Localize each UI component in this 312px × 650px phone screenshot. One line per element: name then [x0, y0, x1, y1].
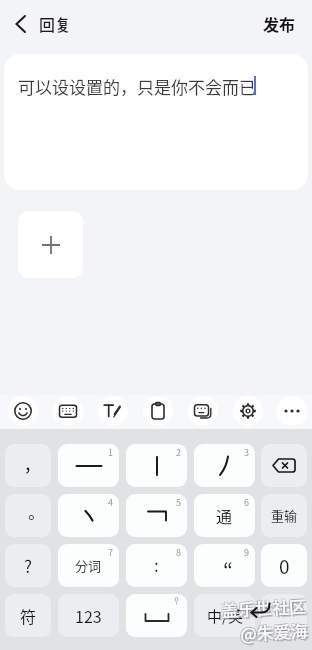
- staticText: 7: [108, 546, 113, 559]
- staticText: 重输: [271, 506, 298, 525]
- staticText: 5: [176, 496, 181, 509]
- staticText: 通: [216, 504, 233, 527]
- staticText: 4: [108, 496, 113, 509]
- staticText: 0: [279, 552, 290, 580]
- staticText: 123: [75, 604, 102, 627]
- staticText: 分词: [75, 556, 102, 575]
- staticText: 可以设设置的，只是你不会而已: [18, 74, 256, 99]
- staticText: 6: [244, 496, 249, 509]
- staticText: 。: [28, 499, 45, 524]
- staticText: 盖乐世社区: [219, 592, 306, 621]
- staticText: :: [154, 552, 159, 577]
- staticText: 3: [244, 446, 249, 459]
- staticText: 1: [108, 446, 113, 459]
- staticText: ?: [24, 553, 33, 578]
- staticText: 盖乐世社区: [221, 592, 308, 621]
- staticText: 盖乐世社区: [219, 594, 306, 623]
- staticText: 盖乐世社区: [220, 593, 307, 622]
- staticText: 2: [176, 446, 181, 459]
- staticText: 回复: [39, 12, 72, 35]
- staticText: @朱爱海: [241, 619, 311, 648]
- staticText: 9: [244, 546, 249, 559]
- staticText: 盖乐世社区: [221, 594, 308, 623]
- staticText: @朱爱海: [238, 616, 307, 645]
- staticText: @朱爱海: [239, 617, 309, 646]
- staticText: ,: [25, 447, 31, 476]
- staticText: 中/英: [207, 605, 243, 627]
- staticText: @朱爱海: [238, 618, 308, 647]
- staticText: 符: [20, 604, 37, 627]
- staticText: 发布: [263, 12, 296, 35]
- staticText: “: [223, 555, 233, 585]
- staticText: 盖乐世社区: [222, 595, 309, 624]
- staticText: 8: [176, 546, 181, 559]
- staticText: @朱爱海: [240, 618, 310, 647]
- staticText: @朱爱海: [240, 616, 309, 645]
